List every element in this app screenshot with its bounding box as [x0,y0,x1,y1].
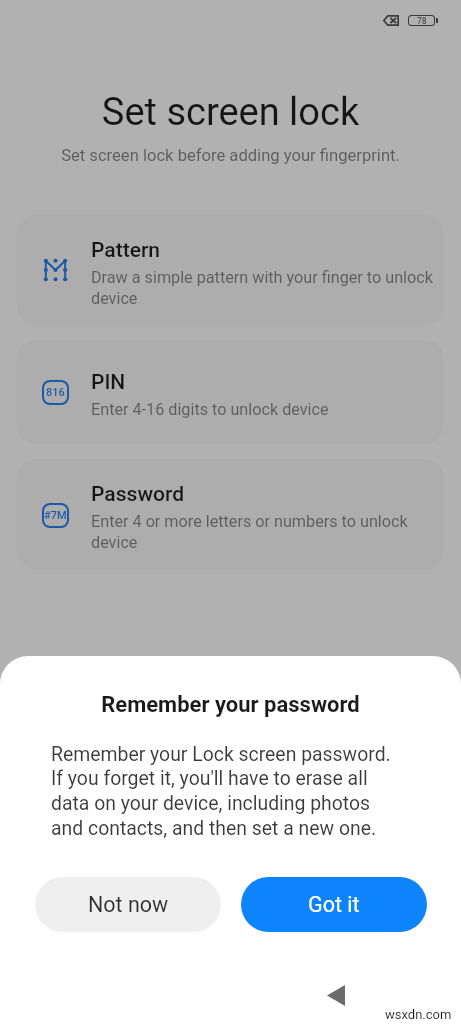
button[interactable]: 816 [17,340,444,444]
staticText: Set screen lock [0,90,461,135]
button[interactable]: Not now [35,877,221,932]
staticText: Remember your password [0,692,461,718]
button[interactable]: Back [316,975,356,1015]
staticText: Remember your Lock screen password. If y… [51,743,394,840]
staticText: Pattern [91,238,161,263]
button[interactable]: Pattern [17,214,444,326]
staticText: 78 [417,16,427,25]
staticText: Not now [88,892,169,917]
staticText: #7M [44,509,67,522]
button[interactable]: Got it [241,877,427,932]
staticText: Set screen lock before adding your finge… [0,146,461,165]
staticText: PIN [91,370,126,395]
staticText: Got it [308,892,360,917]
staticText: wsxdn.com [385,1007,452,1022]
staticText: Enter 4-16 digits to unlock device [91,400,329,419]
staticText: Password [91,482,185,507]
staticText: Enter 4 or more letters or numbers to un… [91,512,442,552]
staticText: 816 [46,386,65,399]
staticText: Draw a simple pattern with your finger t… [91,268,442,308]
button[interactable]: #7M [17,459,444,570]
